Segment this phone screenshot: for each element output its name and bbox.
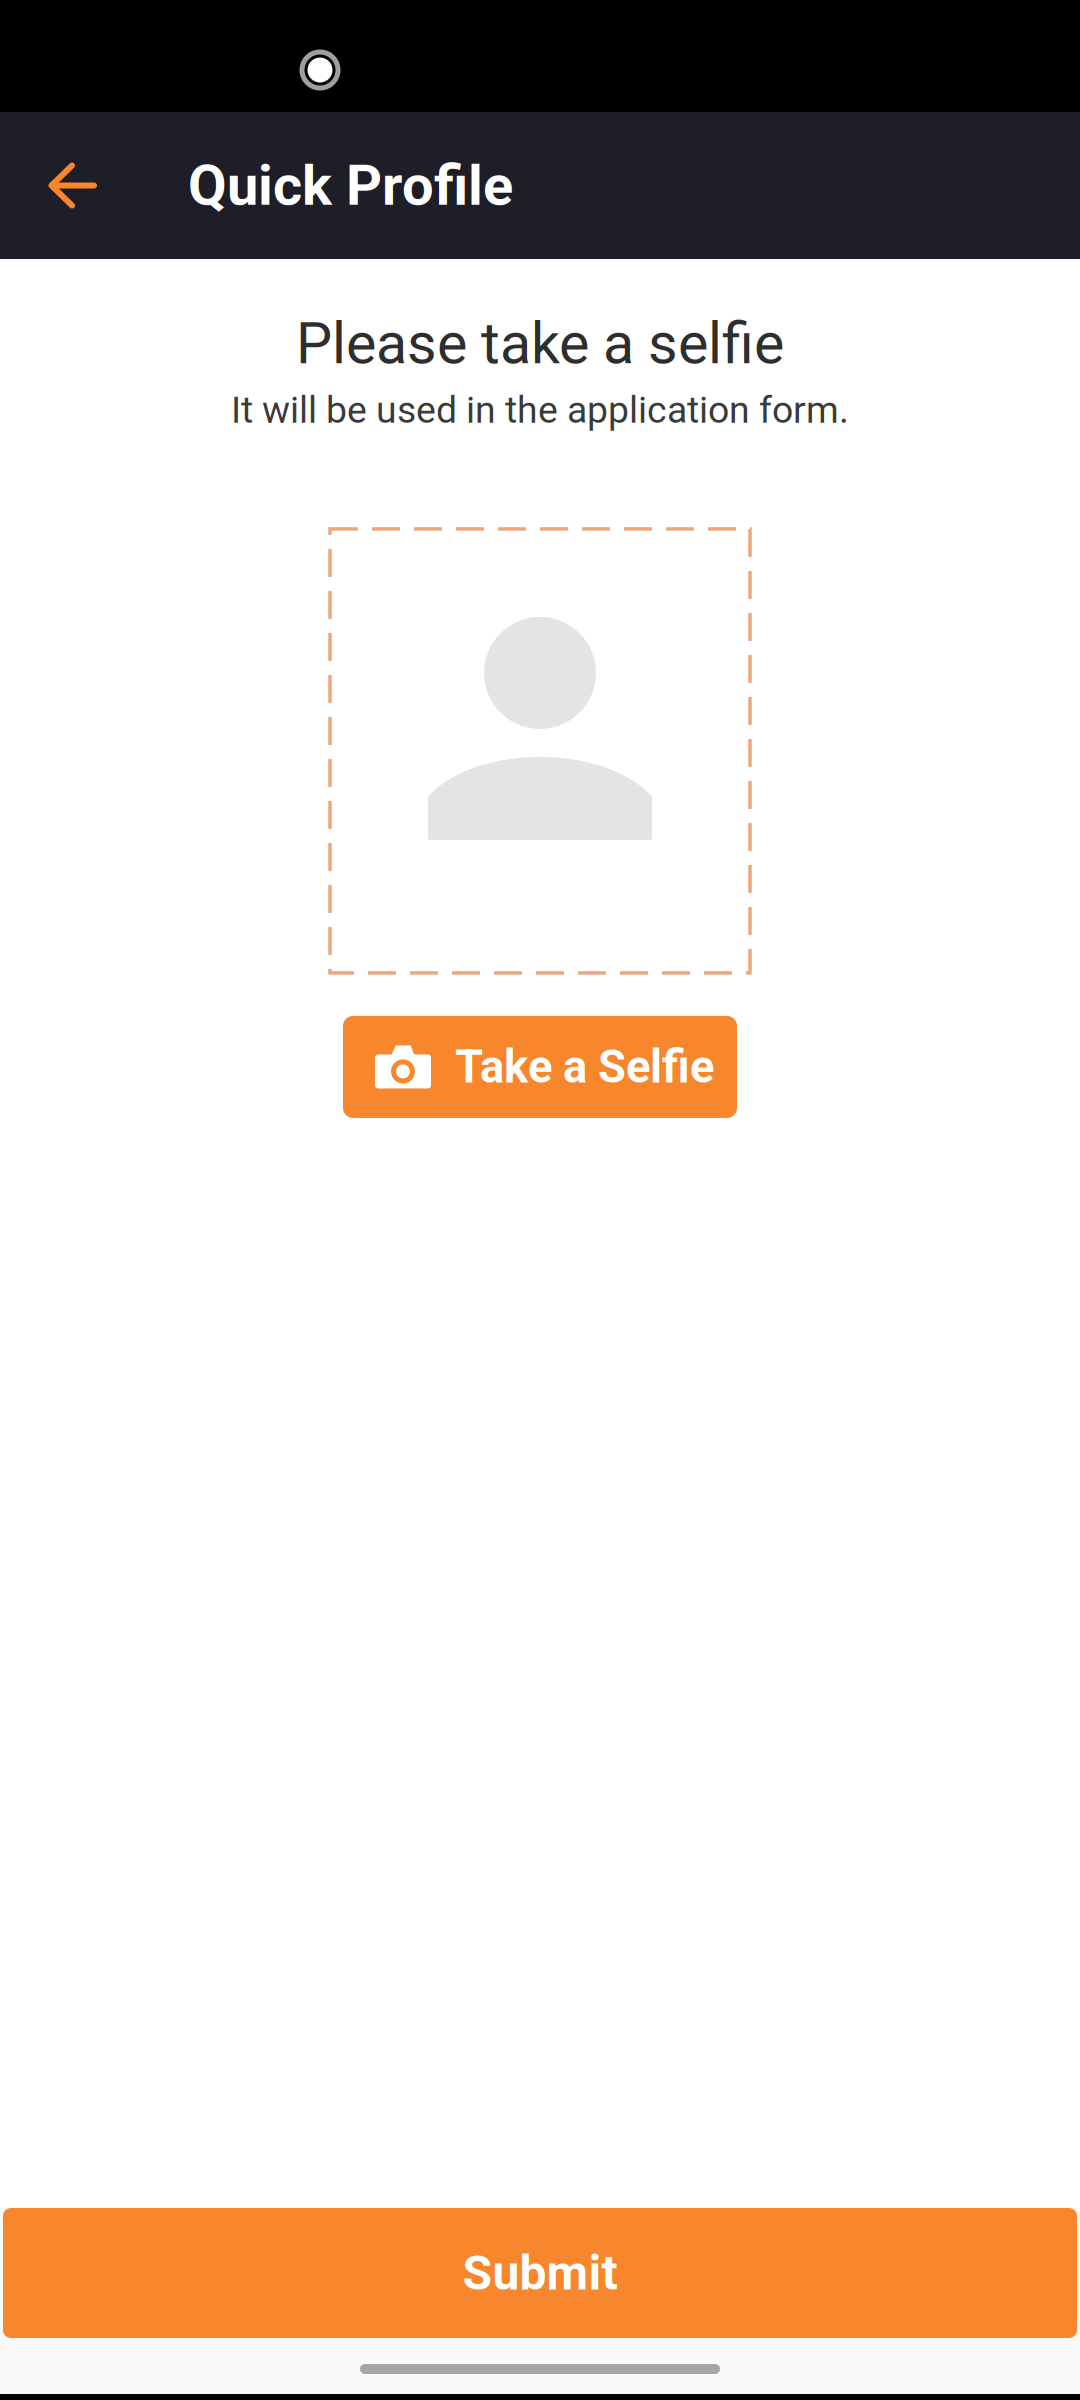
button[interactable]: Back — [0, 112, 146, 259]
staticText: Submit — [462, 2245, 617, 2301]
staticText: It will be used in the application form. — [231, 388, 849, 432]
button[interactable]: Take a Selfie — [343, 1016, 737, 1118]
staticText: Please take a selfie — [296, 310, 784, 377]
staticText: Take a Selfie — [455, 1040, 714, 1093]
staticText: Quick Profile — [188, 153, 513, 218]
button[interactable]: Submit — [3, 2208, 1077, 2338]
